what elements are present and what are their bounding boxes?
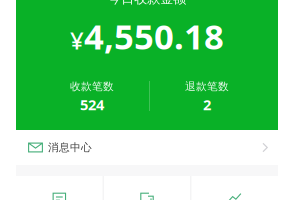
staticText: 今日收款金额 xyxy=(108,0,186,7)
button[interactable]: 收款记录 xyxy=(16,176,103,200)
button[interactable]: 经营分析 xyxy=(191,176,278,200)
button[interactable]: 电子回单 xyxy=(104,176,190,200)
staticText: 收款笔数 xyxy=(70,80,114,93)
staticText: 2 xyxy=(203,95,211,114)
staticText: ¥4,550.18 xyxy=(70,13,224,59)
staticText: 消息中心 xyxy=(48,141,92,154)
button[interactable]: 消息中心 xyxy=(0,130,300,165)
staticText: 524 xyxy=(80,95,104,114)
staticText: 退款笔数 xyxy=(185,80,229,93)
